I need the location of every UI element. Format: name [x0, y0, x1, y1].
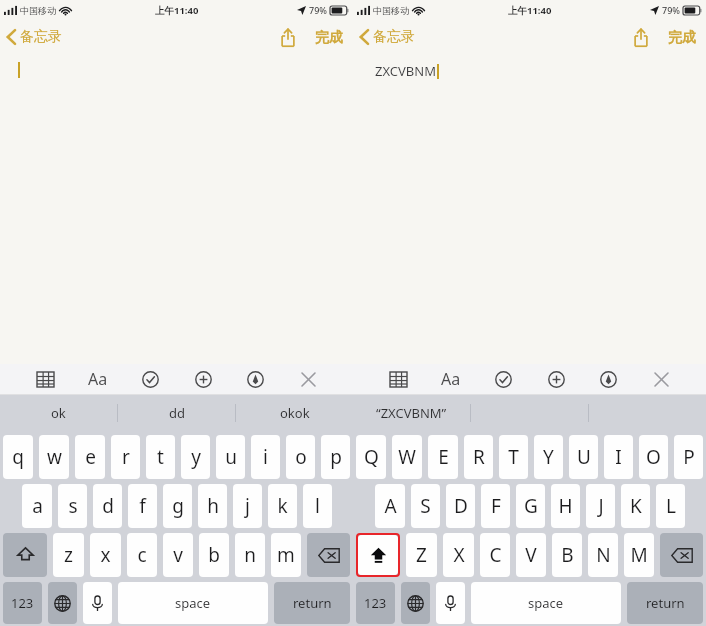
button[interactable]: X [443, 533, 474, 577]
staticText: o [295, 444, 307, 470]
button[interactable]: W [392, 435, 422, 479]
staticText: L [666, 493, 676, 519]
button[interactable]: Add [186, 366, 220, 392]
button[interactable]: Markup [238, 366, 272, 392]
button[interactable]: e [75, 435, 105, 479]
button[interactable]: g [163, 484, 192, 528]
button[interactable]: c [127, 533, 157, 577]
button[interactable]: S [411, 484, 440, 528]
button[interactable]: return [627, 582, 703, 624]
staticText: O [646, 444, 661, 470]
button[interactable]: w [39, 435, 69, 479]
button[interactable]: 完成 [664, 26, 700, 50]
button[interactable]: Dictate [83, 582, 112, 624]
button[interactable]: Q [356, 435, 386, 479]
button[interactable]: dd [118, 395, 235, 431]
button[interactable]: n [235, 533, 265, 577]
staticText: Z [416, 542, 427, 568]
button[interactable]: a [22, 484, 52, 528]
button[interactable]: Z [406, 533, 437, 577]
button[interactable]: d [93, 484, 122, 528]
button[interactable]: N [588, 533, 618, 577]
button[interactable]: v [163, 533, 193, 577]
staticText: 完成 [315, 29, 343, 47]
button[interactable]: Shift [3, 533, 47, 577]
button[interactable]: space [118, 582, 268, 624]
button[interactable]: Text format [81, 366, 115, 392]
button[interactable]: space [471, 582, 621, 624]
button[interactable]: Add [539, 366, 573, 392]
button[interactable]: V [516, 533, 546, 577]
button[interactable]: 完成 [311, 26, 347, 50]
button[interactable]: Close [291, 366, 325, 392]
button[interactable]: Text format [434, 366, 468, 392]
button[interactable]: s [58, 484, 87, 528]
button[interactable]: U [569, 435, 598, 479]
button[interactable]: 备忘录 [0, 28, 70, 46]
button[interactable]: j [233, 484, 262, 528]
button[interactable]: J [586, 484, 615, 528]
button[interactable]: z [53, 533, 84, 577]
button[interactable]: L [656, 484, 685, 528]
button[interactable]: b [199, 533, 229, 577]
button[interactable]: Share [275, 25, 301, 50]
button[interactable]: Checklist [486, 366, 520, 392]
staticText: E [438, 444, 449, 470]
button[interactable]: ok [0, 395, 117, 431]
button[interactable]: Change keyboard [401, 582, 430, 624]
button[interactable]: p [321, 435, 350, 479]
button[interactable]: m [271, 533, 301, 577]
button[interactable]: Backspace [660, 533, 703, 577]
button[interactable]: P [674, 435, 703, 479]
button[interactable]: M [624, 533, 654, 577]
button[interactable]: 123 [3, 582, 42, 624]
staticText: X [453, 542, 465, 568]
button[interactable]: x [90, 533, 121, 577]
button[interactable]: 备忘录 [353, 28, 423, 46]
button[interactable]: t [146, 435, 175, 479]
button[interactable]: O [639, 435, 668, 479]
button[interactable]: R [464, 435, 493, 479]
button[interactable]: Shift [358, 535, 398, 575]
button[interactable]: f [128, 484, 157, 528]
button[interactable]: y [181, 435, 210, 479]
button[interactable]: Dictate [436, 582, 465, 624]
button[interactable]: E [428, 435, 458, 479]
button[interactable]: I [604, 435, 633, 479]
button[interactable]: C [480, 533, 510, 577]
button[interactable]: Markup [591, 366, 625, 392]
button[interactable]: Table [28, 366, 62, 392]
button[interactable]: l [303, 484, 332, 528]
button[interactable]: H [551, 484, 580, 528]
staticText: v [173, 542, 183, 568]
button[interactable]: T [499, 435, 528, 479]
button[interactable]: o [286, 435, 315, 479]
button[interactable]: D [446, 484, 475, 528]
button[interactable]: Close [644, 366, 678, 392]
button[interactable]: Share [628, 25, 654, 50]
button[interactable]: B [552, 533, 582, 577]
staticText: D [454, 493, 468, 519]
button[interactable]: okok [236, 395, 353, 431]
button[interactable]: k [268, 484, 297, 528]
button[interactable]: Checklist [133, 366, 167, 392]
button[interactable]: F [481, 484, 510, 528]
button[interactable]: return [274, 582, 350, 624]
button[interactable]: Change keyboard [48, 582, 77, 624]
button[interactable]: “ZXCVBNM” [353, 395, 470, 431]
button[interactable]: Table [381, 366, 415, 392]
staticText: C [489, 542, 502, 568]
button[interactable]: 123 [356, 582, 395, 624]
button[interactable]: q [3, 435, 33, 479]
button[interactable]: A [375, 484, 405, 528]
button[interactable]: h [198, 484, 227, 528]
button[interactable]: Backspace [307, 533, 350, 577]
button[interactable]: i [251, 435, 280, 479]
button[interactable]: u [216, 435, 245, 479]
button[interactable]: G [516, 484, 545, 528]
button[interactable]: r [111, 435, 140, 479]
button[interactable]: Y [534, 435, 563, 479]
button[interactable]: K [621, 484, 650, 528]
